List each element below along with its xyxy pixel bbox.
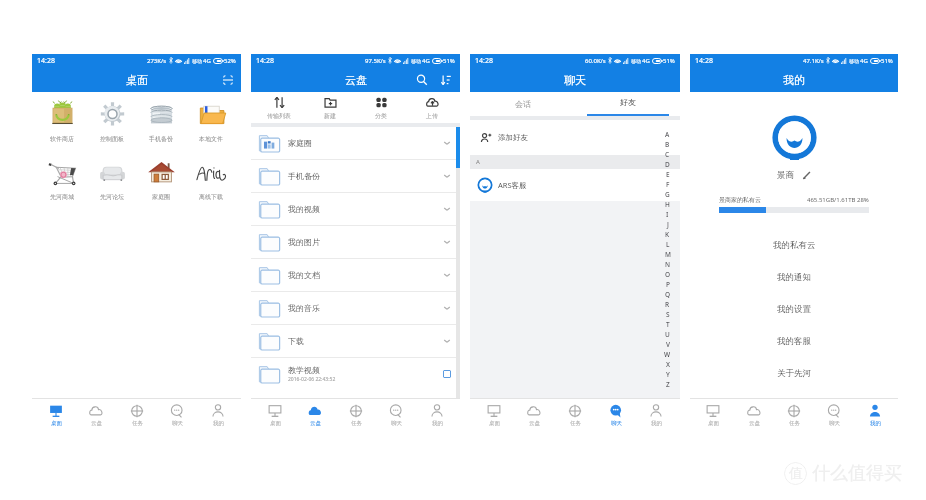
staticText: X — [666, 360, 670, 369]
staticText: W — [664, 350, 671, 359]
staticText: 手机备份 — [149, 135, 173, 143]
staticText: 任务 — [789, 420, 800, 427]
button[interactable]: 手机备份 — [251, 160, 460, 193]
staticText: Z — [666, 380, 670, 389]
button[interactable]: 云盘 — [79, 399, 113, 427]
button[interactable]: Search — [416, 74, 428, 86]
staticText: 下载 — [288, 336, 304, 346]
button[interactable]: 我的 — [858, 399, 892, 427]
staticText: M — [665, 250, 671, 259]
staticText: 51% — [443, 57, 455, 65]
button[interactable]: 桌面 — [32, 67, 241, 92]
staticText: 云盘 — [310, 420, 321, 427]
staticText: Y — [666, 370, 670, 379]
staticText: 教学视频 — [288, 365, 320, 375]
button[interactable]: 家庭圈 — [138, 158, 184, 201]
button[interactable]: 我的设置 — [690, 293, 898, 325]
button[interactable]: 分类 — [358, 96, 404, 120]
staticText: 我的设置 — [777, 304, 811, 315]
staticText: 聊天 — [391, 420, 402, 427]
button[interactable]: 关于先河 — [690, 357, 898, 389]
staticText: 聊天 — [172, 420, 183, 427]
button[interactable]: 下载 — [251, 325, 460, 358]
button[interactable]: 聊天 — [379, 399, 413, 427]
staticText: 桌面 — [126, 73, 148, 87]
button[interactable]: Scan QR code — [222, 74, 234, 86]
staticText: H — [665, 200, 670, 209]
button[interactable]: 任务 — [558, 399, 592, 427]
button[interactable]: 我的私有云 — [690, 229, 898, 261]
button[interactable]: 软件商店 — [39, 100, 85, 143]
button[interactable]: 先河论坛 — [89, 158, 135, 201]
button[interactable]: 教学视频 — [251, 358, 460, 390]
staticText: 桌面 — [270, 420, 281, 427]
button[interactable]: 控制面板 — [89, 100, 135, 143]
button[interactable]: 聊天 — [817, 399, 851, 427]
button[interactable]: 手机备份 — [138, 100, 184, 143]
button[interactable]: 云盘 — [517, 399, 551, 427]
button[interactable]: 任务 — [120, 399, 154, 427]
button[interactable]: ARS客服 — [470, 169, 680, 201]
button[interactable]: 家庭圈 — [251, 127, 460, 160]
button[interactable]: 桌面 — [39, 399, 73, 427]
button[interactable]: 云盘 — [298, 399, 332, 427]
staticText: T — [666, 320, 670, 329]
button[interactable]: 任务 — [339, 399, 373, 427]
staticText: O — [665, 270, 671, 279]
button[interactable]: Edit name — [802, 171, 811, 180]
button[interactable]: 会话 — [470, 92, 575, 116]
button[interactable]: 聊天 — [160, 399, 194, 427]
button[interactable]: 我的图片 — [251, 226, 460, 259]
staticText: 我的客服 — [777, 336, 811, 347]
button[interactable]: 任务 — [777, 399, 811, 427]
staticText: K — [665, 230, 670, 239]
button[interactable]: 桌面 — [258, 399, 292, 427]
staticText: 软件商店 — [50, 135, 74, 143]
button[interactable]: 离线下载 — [188, 158, 234, 201]
button[interactable]: 我的客服 — [690, 325, 898, 357]
button[interactable]: 好友 — [575, 92, 680, 116]
button[interactable]: 我的视频 — [251, 193, 460, 226]
staticText: 景商 — [777, 170, 794, 181]
staticText: 移动 — [631, 58, 641, 64]
staticText: 51% — [663, 57, 675, 65]
staticText: 值 — [789, 465, 803, 483]
staticText: 先河商城 — [50, 193, 74, 201]
button[interactable]: 聊天 — [599, 399, 633, 427]
staticText: 我的私有云 — [773, 240, 816, 251]
staticText: 465.51GB/1.61TB 28% — [807, 196, 869, 204]
button[interactable]: 桌面 — [696, 399, 730, 427]
staticText: 14:28 — [475, 56, 493, 66]
button[interactable]: 添加好友 — [470, 120, 680, 155]
button[interactable]: 我的 — [639, 399, 673, 427]
staticText: 我的 — [432, 420, 443, 427]
button[interactable]: Sort — [440, 74, 452, 86]
staticText: 我的 — [870, 420, 881, 427]
button[interactable]: 我的 — [690, 67, 898, 92]
button[interactable]: 先河商城 — [39, 158, 85, 201]
button[interactable]: 我的 — [420, 399, 454, 427]
button[interactable]: 本地文件 — [188, 100, 234, 143]
button[interactable]: 云盘 — [737, 399, 771, 427]
staticText: A — [476, 158, 480, 166]
staticText: 52% — [224, 57, 236, 65]
button[interactable]: 云盘 — [251, 67, 460, 92]
button[interactable]: 我的 — [201, 399, 235, 427]
staticText: 移动 — [411, 58, 421, 64]
staticText: 60.0K/s — [585, 57, 606, 65]
button[interactable]: 桌面 — [477, 399, 511, 427]
button[interactable]: 新建 — [307, 96, 353, 120]
staticText: 任务 — [351, 420, 362, 427]
staticText: 云盘 — [749, 420, 760, 427]
button[interactable]: 聊天 — [470, 67, 680, 92]
staticText: I — [666, 210, 669, 219]
staticText: C — [665, 150, 670, 159]
button[interactable]: 传输列表 — [256, 96, 302, 120]
staticText: A — [665, 130, 670, 139]
button[interactable]: 我的通知 — [690, 261, 898, 293]
button[interactable]: 上传 — [409, 96, 455, 120]
staticText: 先河论坛 — [100, 193, 124, 201]
button[interactable]: 我的音乐 — [251, 292, 460, 325]
staticText: 桌面 — [708, 420, 719, 427]
button[interactable]: 我的文档 — [251, 259, 460, 292]
